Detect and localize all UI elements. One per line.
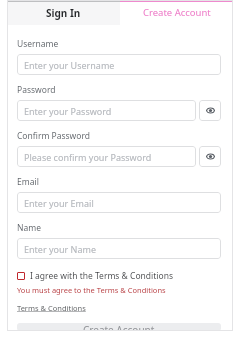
- button[interactable]: Enter your Email: [17, 192, 221, 213]
- button[interactable]: Enter your Name: [17, 238, 221, 259]
- staticText: Name: [17, 222, 41, 234]
- staticText: Create Account: [143, 6, 211, 19]
- button[interactable]: Terms & Conditions: [17, 303, 86, 313]
- button[interactable]: Sign In: [7, 0, 120, 25]
- staticText: Create Account: [83, 323, 155, 331]
- staticText: Confirm Password: [17, 130, 90, 142]
- button[interactable]: Show password: [199, 100, 221, 121]
- button[interactable]: Create Account: [17, 323, 221, 331]
- button[interactable]: Show confirm password: [199, 146, 221, 167]
- staticText: Password: [17, 84, 56, 96]
- staticText: You must agree to the Terms & Conditions: [17, 285, 166, 295]
- button[interactable]: Create Account: [120, 0, 233, 25]
- staticText: Enter your Username: [24, 59, 115, 71]
- staticText: I agree with the Terms & Conditions: [30, 270, 173, 282]
- staticText: Enter your Password: [24, 105, 112, 117]
- button[interactable]: Please confirm your Password: [17, 146, 196, 167]
- button[interactable]: Enter your Username: [17, 54, 221, 75]
- staticText: Sign In: [46, 6, 81, 20]
- staticText: Enter your Name: [24, 243, 96, 255]
- button[interactable]: Enter your Password: [17, 100, 196, 121]
- staticText: Please confirm your Password: [24, 151, 152, 163]
- staticText: Enter your Email: [24, 197, 94, 209]
- button[interactable]: I agree with the Terms & Conditions: [17, 270, 221, 282]
- staticText: Email: [17, 176, 39, 188]
- staticText: Username: [17, 38, 59, 50]
